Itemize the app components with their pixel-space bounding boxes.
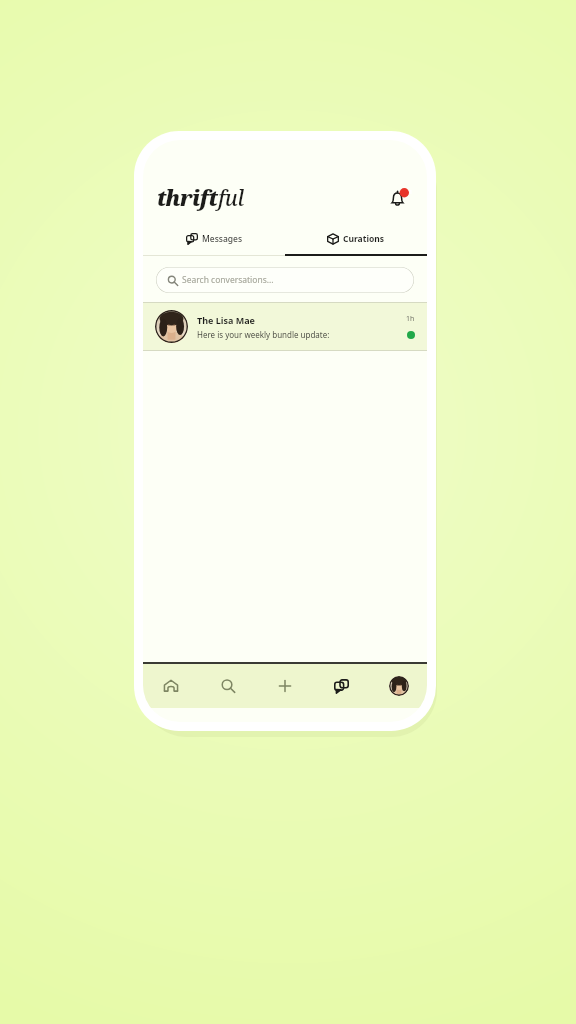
staticText: 1 [409,188,413,195]
staticText: 1h [406,314,415,324]
button[interactable]: The Lisa Mae [143,303,427,350]
staticText: Curations [343,233,385,245]
staticText: The Lisa Mae [197,314,255,326]
button[interactable]: Profile [370,664,427,708]
button[interactable]: Create [256,664,313,708]
staticText: thrift [157,184,218,213]
staticText: ful [218,184,244,213]
button[interactable]: Search [199,664,256,708]
button[interactable]: Home [143,664,199,708]
button[interactable]: Curations [285,222,427,256]
button[interactable]: Messages [143,222,285,256]
button[interactable]: Notifications [384,183,414,213]
staticText: Messages [202,233,243,245]
button[interactable]: Messages [313,664,370,708]
staticText: Search conversations... [182,274,274,286]
button[interactable]: Search conversations... [156,267,414,293]
staticText: Here is your weekly bundle update: [197,329,330,340]
